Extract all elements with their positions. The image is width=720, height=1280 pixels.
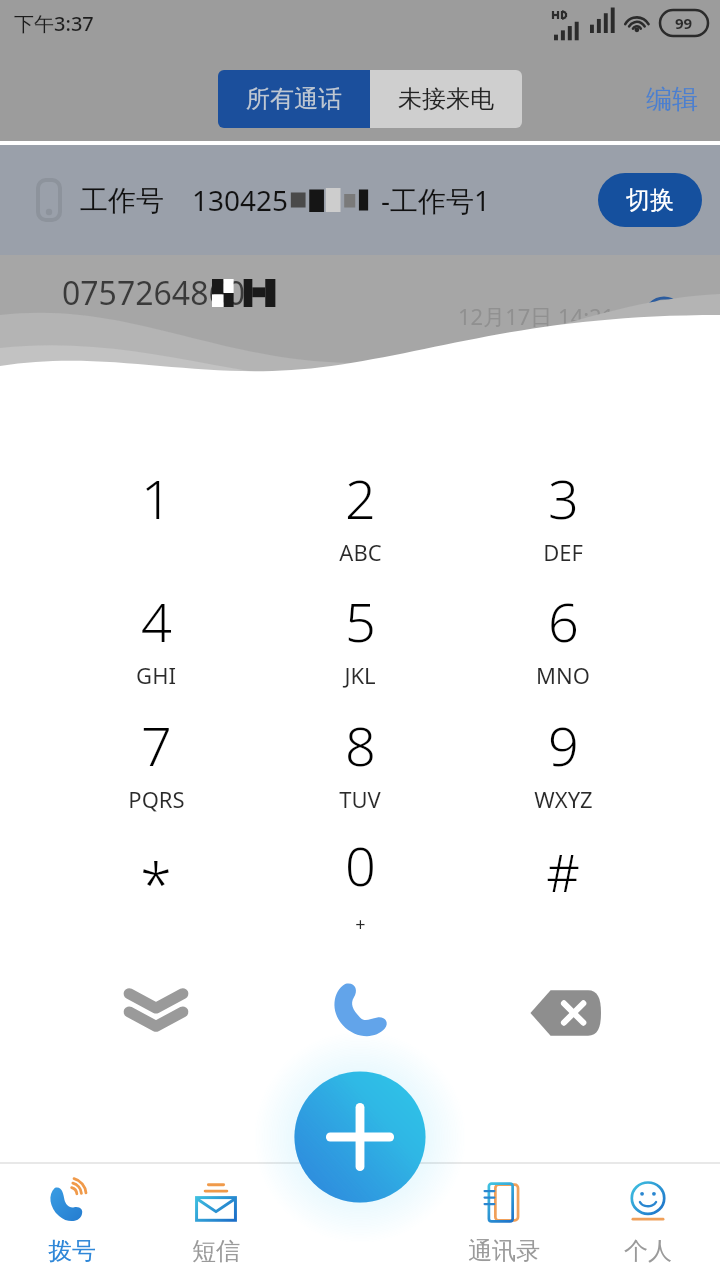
- staticText: 3: [548, 461, 579, 535]
- staticText: 工作号: [80, 183, 164, 218]
- staticText: 4: [141, 584, 172, 658]
- button[interactable]: Delete: [505, 953, 625, 1073]
- button[interactable]: 4: [56, 576, 256, 700]
- button[interactable]: 2: [260, 453, 460, 577]
- button[interactable]: 5: [260, 576, 460, 700]
- staticText: *: [140, 844, 172, 923]
- staticText: 短信: [192, 1236, 240, 1266]
- button[interactable]: 8: [260, 700, 460, 824]
- staticText: 99: [675, 13, 693, 33]
- staticText: 个人: [624, 1236, 672, 1266]
- button[interactable]: 未接来电: [370, 70, 522, 128]
- staticText: WXYZ: [534, 784, 593, 814]
- staticText: #: [546, 836, 580, 907]
- button[interactable]: #: [463, 820, 663, 944]
- button[interactable]: 3: [463, 453, 663, 577]
- button[interactable]: 编辑: [646, 70, 698, 128]
- staticText: -工作号1: [381, 181, 491, 219]
- staticText: +: [355, 912, 366, 937]
- staticText: 7: [141, 708, 172, 782]
- staticText: 6: [548, 584, 579, 658]
- button[interactable]: 个人: [576, 1162, 720, 1280]
- staticText: DEF: [543, 537, 583, 567]
- button[interactable]: 9: [463, 700, 663, 824]
- staticText: 130425: [192, 181, 289, 219]
- button[interactable]: 7: [56, 700, 256, 824]
- button[interactable]: 切换: [598, 173, 702, 227]
- staticText: 拨号: [48, 1236, 96, 1266]
- staticText: 12月17日 14:21: [458, 301, 615, 331]
- staticText: 0: [345, 828, 376, 902]
- staticText: JKL: [344, 660, 376, 690]
- button[interactable]: Add: [265, 1042, 455, 1232]
- button[interactable]: Call details: [640, 293, 688, 341]
- staticText: 下午3:37: [14, 10, 94, 37]
- staticText: 9: [548, 708, 579, 782]
- button[interactable]: 短信: [144, 1162, 288, 1280]
- staticText: 通讯录: [468, 1236, 540, 1266]
- button[interactable]: 1: [56, 453, 256, 577]
- staticText: 所有通话: [246, 84, 342, 114]
- button[interactable]: 0: [260, 820, 460, 944]
- button[interactable]: Hide keypad: [96, 950, 216, 1070]
- staticText: 1: [141, 461, 172, 535]
- button[interactable]: Call: [300, 950, 420, 1070]
- staticText: ABC: [339, 537, 382, 567]
- staticText: 0757264860: [62, 271, 246, 315]
- button[interactable]: *: [56, 820, 256, 944]
- button[interactable]: 工作号: [0, 145, 720, 255]
- staticText: PQRS: [128, 784, 185, 814]
- button[interactable]: 通讯录: [432, 1162, 576, 1280]
- staticText: MNO: [536, 660, 590, 690]
- button[interactable]: 6: [463, 576, 663, 700]
- staticText: 广东 佛山: [62, 323, 156, 353]
- staticText: 切换: [626, 185, 674, 215]
- staticText: TUV: [339, 784, 381, 814]
- staticText: 8: [345, 708, 376, 782]
- button[interactable]: 所有通话: [218, 70, 370, 128]
- staticText: 编辑: [646, 83, 698, 116]
- staticText: 5: [345, 584, 376, 658]
- staticText: GHI: [136, 660, 176, 690]
- staticText: 2: [345, 461, 376, 535]
- button[interactable]: 拨号: [0, 1162, 144, 1280]
- staticText: 未接来电: [398, 84, 494, 114]
